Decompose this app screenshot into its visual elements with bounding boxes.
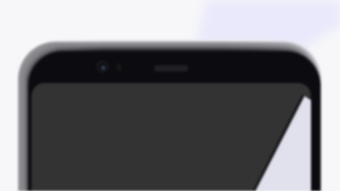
button[interactable]: Smartphone product photo	[0, 0, 340, 191]
